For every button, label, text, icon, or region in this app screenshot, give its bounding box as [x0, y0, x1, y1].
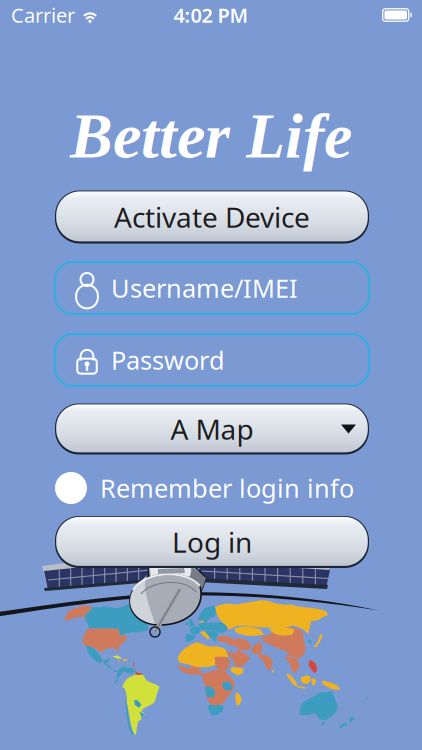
staticText: Username/IMEI — [111, 271, 298, 305]
button[interactable]: Username/IMEI — [55, 262, 369, 314]
staticText: Log in — [172, 523, 252, 561]
staticText: Remember login info — [100, 471, 354, 505]
staticText: Activate Device — [114, 198, 310, 236]
button[interactable]: Remember login info — [55, 470, 369, 506]
button[interactable]: Password — [55, 334, 369, 386]
staticText: 4:02 PM — [173, 2, 248, 28]
button[interactable]: Activate Device — [55, 190, 369, 243]
button[interactable]: A Map — [55, 403, 369, 454]
staticText: Password — [111, 343, 225, 377]
button[interactable]: Log in — [55, 516, 369, 568]
staticText: Carrier — [11, 2, 75, 28]
staticText: A Map — [170, 410, 253, 448]
staticText: Better Life — [70, 101, 352, 171]
